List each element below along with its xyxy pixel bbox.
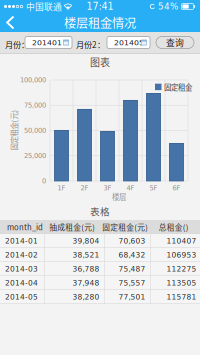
staticText: 110407 xyxy=(166,237,196,245)
staticText: 54% xyxy=(155,1,181,12)
staticText: 6F xyxy=(172,184,180,192)
staticText: 2014-01 xyxy=(5,237,38,245)
staticText: 17:41 xyxy=(86,1,113,12)
button[interactable]: 查询 xyxy=(156,36,194,48)
staticText: 37,948 xyxy=(72,279,99,287)
staticText: 106953 xyxy=(166,251,196,259)
staticText: 113505 xyxy=(166,279,196,287)
staticText: 总租金() xyxy=(159,221,189,233)
staticText: 115781 xyxy=(166,293,196,301)
staticText: 25,000 xyxy=(24,152,46,160)
staticText: 75,557 xyxy=(118,279,145,287)
staticText: 75,000 xyxy=(24,101,46,109)
staticText: 2014-05 xyxy=(5,293,38,301)
staticText: 75,487 xyxy=(118,265,145,273)
staticText: 68,432 xyxy=(118,251,145,259)
staticText: 楼层租金情况 xyxy=(64,14,136,31)
staticText: month_id xyxy=(7,221,43,233)
staticText: 39,804 xyxy=(72,237,99,245)
staticText: 固定租金 xyxy=(164,81,192,92)
staticText: 77,501 xyxy=(118,293,145,301)
staticText: 38,521 xyxy=(72,251,99,259)
staticText: 0 xyxy=(42,177,46,185)
staticText: 201401 xyxy=(32,38,62,47)
staticText: 中国联通 xyxy=(24,0,64,13)
staticText: 4F xyxy=(126,184,134,192)
staticText: 表格 xyxy=(90,204,110,218)
staticText: 36,788 xyxy=(72,265,99,273)
staticText: 图表 xyxy=(90,55,110,69)
staticText: 50,000 xyxy=(24,127,46,134)
staticText: 5F xyxy=(149,184,157,192)
staticText: 固定租金(元) xyxy=(0,125,34,135)
staticText: 38,280 xyxy=(72,293,99,301)
staticText: 112275 xyxy=(166,265,196,273)
staticText: 70,603 xyxy=(118,237,145,245)
staticText: 201405 xyxy=(114,38,144,47)
staticText: 查询 xyxy=(166,36,184,49)
staticText: 楼层 xyxy=(112,191,126,202)
staticText: 月份2： xyxy=(76,38,105,50)
staticText: 抽成租金(元) xyxy=(49,221,95,233)
staticText: 2014-04 xyxy=(5,279,38,287)
button[interactable]: Back xyxy=(0,13,25,31)
staticText: 月份： xyxy=(5,38,29,50)
staticText: 2014-02 xyxy=(5,251,38,259)
staticText: 1F xyxy=(57,184,65,192)
staticText: 固定租金(元) xyxy=(102,221,148,233)
staticText: 100,000 xyxy=(20,76,46,84)
staticText: 3F xyxy=(103,184,111,192)
staticText: 2014-03 xyxy=(5,265,38,273)
staticText: 2F xyxy=(80,184,88,192)
